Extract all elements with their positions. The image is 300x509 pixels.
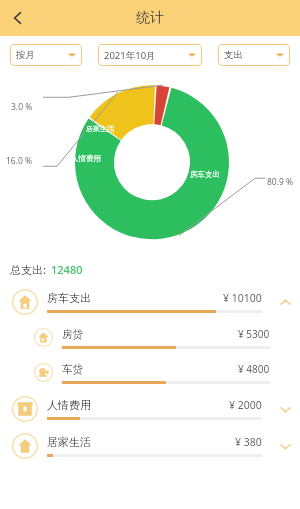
- button[interactable]: 按月: [10, 44, 82, 66]
- staticText: 12480: [51, 262, 83, 277]
- staticText: 支出: [224, 49, 243, 61]
- staticText: 居家生活: [86, 124, 114, 133]
- staticText: ¥ 5300: [238, 327, 270, 341]
- button[interactable]: Collapse: [270, 287, 300, 317]
- staticText: ¥ 10100: [223, 291, 262, 305]
- staticText: 80.9 %: [267, 176, 294, 188]
- staticText: 按月: [16, 49, 35, 61]
- staticText: ¥ 4800: [238, 362, 270, 376]
- button[interactable]: Expand: [270, 394, 300, 424]
- staticText: ¥ 2000: [229, 398, 262, 412]
- staticText: 总支出:: [10, 262, 46, 277]
- button[interactable]: 人情费用: [0, 390, 300, 427]
- staticText: ¥ 380: [235, 435, 262, 449]
- button[interactable]: 房车支出: [0, 283, 300, 320]
- staticText: 统计: [136, 9, 164, 27]
- button[interactable]: 2021年10月: [98, 44, 202, 66]
- button[interactable]: Expand: [270, 431, 300, 461]
- staticText: 房贷: [62, 328, 83, 341]
- staticText: 人情费用: [47, 398, 91, 412]
- staticText: 房车支出: [47, 291, 91, 305]
- button[interactable]: 房贷: [0, 320, 300, 355]
- staticText: 房车支出: [190, 170, 220, 179]
- staticText: 3.0 %: [11, 101, 33, 113]
- button[interactable]: Back: [0, 0, 36, 36]
- button[interactable]: 车贷: [0, 355, 300, 390]
- staticText: 人情费用: [71, 154, 101, 163]
- button[interactable]: 支出: [218, 44, 290, 66]
- staticText: 车贷: [62, 363, 83, 376]
- button[interactable]: 居家生活: [0, 427, 300, 464]
- staticText: 2021年10月: [104, 49, 156, 62]
- staticText: 16.0 %: [6, 155, 33, 167]
- staticText: 居家生活: [47, 435, 91, 449]
